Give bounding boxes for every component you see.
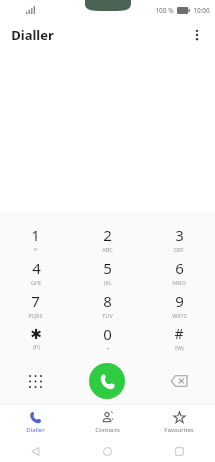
- button[interactable]: Call: [89, 363, 125, 399]
- staticText: ∞: [33, 246, 38, 252]
- staticText: Dialler: [26, 426, 45, 434]
- staticText: 7: [31, 291, 40, 311]
- staticText: 10:00: [193, 6, 210, 15]
- button[interactable]: #: [143, 321, 215, 354]
- staticText: 9: [175, 291, 184, 311]
- button[interactable]: Backspace: [143, 358, 215, 404]
- button[interactable]: 8: [71, 288, 143, 321]
- staticText: Contacts: [95, 426, 120, 434]
- button[interactable]: Keypad: [0, 358, 71, 404]
- button[interactable]: 5: [71, 255, 143, 288]
- staticText: 4: [32, 258, 41, 278]
- button[interactable]: Home: [71, 440, 143, 462]
- staticText: TUV: [102, 312, 113, 319]
- staticText: Dialler: [11, 26, 54, 44]
- button[interactable]: Contacts: [71, 405, 143, 440]
- staticText: 5: [103, 258, 112, 278]
- staticText: Favourites: [164, 426, 194, 434]
- button[interactable]: 1: [0, 222, 71, 255]
- button[interactable]: 7: [0, 288, 71, 321]
- staticText: GHI: [31, 279, 41, 286]
- button[interactable]: More options: [183, 21, 211, 49]
- staticText: 2: [103, 225, 112, 245]
- staticText: MNO: [172, 279, 186, 286]
- button[interactable]: ✱: [0, 321, 71, 354]
- staticText: #: [174, 324, 184, 343]
- button[interactable]: 6: [143, 255, 215, 288]
- staticText: 3: [175, 225, 184, 245]
- staticText: 1: [31, 225, 40, 245]
- staticText: PQRS: [28, 312, 43, 319]
- staticText: 8: [103, 291, 112, 311]
- staticText: JKL: [104, 279, 112, 286]
- staticText: 100 %: [155, 6, 174, 15]
- staticText: 0: [103, 324, 112, 344]
- button[interactable]: 3: [143, 222, 215, 255]
- staticText: ✱: [30, 326, 42, 342]
- staticText: (P): [33, 343, 40, 350]
- button[interactable]: Favourites: [143, 405, 215, 440]
- staticText: DEF: [174, 246, 184, 253]
- staticText: (W): [175, 344, 184, 351]
- button[interactable]: 2: [71, 222, 143, 255]
- staticText: ABC: [102, 246, 113, 253]
- staticText: 6: [175, 258, 184, 278]
- button[interactable]: Dialler: [0, 405, 71, 440]
- button[interactable]: 0: [71, 321, 143, 354]
- button[interactable]: Recents: [143, 440, 215, 462]
- button[interactable]: 9: [143, 288, 215, 321]
- staticText: +: [106, 345, 110, 352]
- staticText: WXYZ: [172, 312, 187, 319]
- button[interactable]: 4: [0, 255, 71, 288]
- button[interactable]: Back: [0, 440, 71, 462]
